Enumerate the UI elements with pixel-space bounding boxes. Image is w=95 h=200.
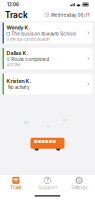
- staticText: No activity: [8, 85, 29, 90]
- staticText: 4:07 PM: [7, 62, 20, 67]
- staticText: Wednesday, 06/11: [50, 12, 89, 18]
- button[interactable]: Track: [0, 174, 32, 192]
- staticText: Kristen K.: [7, 78, 32, 84]
- button[interactable]: Kristen K.: [2, 73, 92, 94]
- button[interactable]: Wednesday, 06/11: [44, 11, 90, 19]
- staticText: The bus is on its way to School: [11, 31, 76, 36]
- staticText: Route completed: [11, 57, 49, 62]
- staticText: Dallas K.: [7, 50, 29, 56]
- staticText: Settings: [71, 185, 87, 190]
- staticText: View bus current location: [7, 37, 50, 42]
- button[interactable]: Dallas K.: [2, 48, 92, 69]
- button[interactable]: Settings: [63, 174, 95, 192]
- button[interactable]: ?: [32, 174, 63, 192]
- staticText: Wendy K.: [7, 24, 31, 31]
- staticText: Track: [5, 10, 28, 20]
- staticText: Track: [10, 185, 21, 190]
- button[interactable]: Wendy K.: [2, 22, 92, 43]
- staticText: 12:06: [7, 2, 19, 7]
- staticText: Support: [38, 185, 56, 190]
- staticText: ?: [46, 177, 49, 184]
